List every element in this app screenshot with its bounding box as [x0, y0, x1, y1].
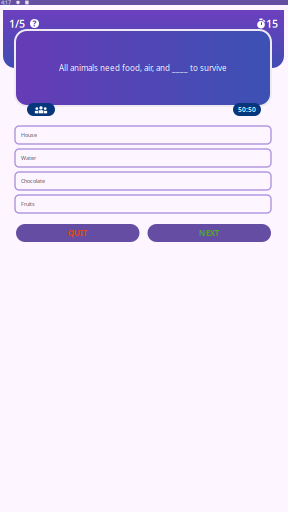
staticText: House: [21, 131, 37, 139]
staticText: Water: [21, 154, 36, 162]
button[interactable]: Help: [30, 19, 39, 28]
staticText: Fruits: [21, 200, 35, 208]
staticText: 4:17: [1, 0, 11, 6]
staticText: 15: [266, 16, 278, 31]
staticText: Chocolate: [21, 177, 45, 185]
button[interactable]: Fruits: [15, 195, 271, 213]
button[interactable]: NEXT: [147, 224, 271, 242]
button[interactable]: QUIT: [16, 224, 139, 242]
staticText: QUIT: [68, 228, 88, 238]
button[interactable]: Ask the audience: [27, 103, 55, 116]
button[interactable]: Water: [15, 149, 271, 167]
staticText: NEXT: [199, 228, 220, 238]
button[interactable]: Chocolate: [15, 172, 271, 190]
staticText: ?: [32, 18, 36, 29]
staticText: 1/5: [9, 16, 25, 31]
button[interactable]: House: [15, 126, 271, 144]
staticText: 50:50: [238, 105, 256, 114]
staticText: All animals need food, air, and ____ to …: [59, 63, 227, 73]
button[interactable]: 50:50: [233, 103, 261, 116]
